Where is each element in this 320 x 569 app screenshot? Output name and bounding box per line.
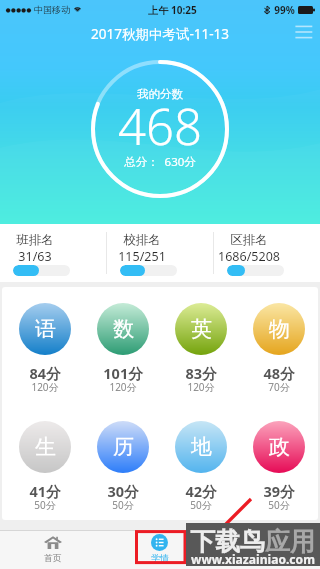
button[interactable]: 区排名 xyxy=(214,224,320,282)
staticText: 生 xyxy=(35,434,56,460)
staticText: 历 xyxy=(113,434,134,460)
button[interactable]: 物 xyxy=(240,303,318,407)
staticText: 数 xyxy=(113,316,134,342)
staticText: 1686/5208 xyxy=(218,248,280,265)
staticText: 70分 xyxy=(268,380,290,394)
button[interactable]: 政 xyxy=(240,421,318,520)
staticText: 48分 xyxy=(263,363,295,383)
staticText: 31/63 xyxy=(18,248,52,265)
staticText: 地 xyxy=(191,434,212,460)
staticText: 120分 xyxy=(31,380,59,394)
button[interactable]: 首页 xyxy=(0,530,106,569)
staticText: 中国移动 xyxy=(34,4,70,15)
staticText: 2017秋期中考试-11-13 xyxy=(91,25,229,43)
staticText: 50分 xyxy=(112,498,134,512)
staticText: 总分： 630分 xyxy=(124,154,196,170)
staticText: 校排名 xyxy=(123,232,161,248)
button[interactable]: Menu xyxy=(290,20,318,46)
staticText: 英 xyxy=(191,316,212,342)
staticText: 84分 xyxy=(29,363,61,383)
staticText: 物 xyxy=(269,316,290,342)
staticText: 50分 xyxy=(34,498,56,512)
staticText: 115/251 xyxy=(118,248,166,265)
staticText: 首页 xyxy=(44,553,62,564)
staticText: 30分 xyxy=(107,481,139,501)
button[interactable]: 地 xyxy=(162,421,240,520)
staticText: 83分 xyxy=(185,363,217,383)
button[interactable]: 英 xyxy=(162,303,240,407)
button[interactable]: 班排名 xyxy=(0,224,106,282)
staticText: 学情 xyxy=(151,553,169,564)
staticText: 101分 xyxy=(103,363,143,383)
staticText: 39分 xyxy=(263,481,295,501)
staticText: 120分 xyxy=(109,380,137,394)
button[interactable]: 学情 xyxy=(106,530,213,569)
staticText: 我的分数 xyxy=(137,87,183,101)
button[interactable]: 历 xyxy=(84,421,162,520)
staticText: 政 xyxy=(269,434,290,460)
staticText: 上午 10:25 xyxy=(148,3,197,17)
button[interactable]: 生 xyxy=(5,421,84,520)
staticText: 41分 xyxy=(29,481,61,501)
staticText: 99% xyxy=(274,3,295,17)
staticText: 语 xyxy=(35,316,56,342)
staticText: 区排名 xyxy=(230,232,268,248)
staticText: 50分 xyxy=(268,498,290,512)
staticText: 下载鸟 xyxy=(190,526,265,557)
staticText: 42分 xyxy=(185,481,217,501)
staticText: ●●●●● xyxy=(5,6,32,13)
staticText: www.xiazainiao.com xyxy=(191,551,315,567)
staticText: 应用 xyxy=(265,526,315,557)
staticText: 120分 xyxy=(187,380,215,394)
staticText: 468 xyxy=(118,93,202,160)
button[interactable]: 数 xyxy=(84,303,162,407)
button[interactable]: 校排名 xyxy=(107,224,213,282)
staticText: 班排名 xyxy=(16,232,54,248)
staticText: 50分 xyxy=(190,498,212,512)
button[interactable]: 语 xyxy=(5,303,84,407)
